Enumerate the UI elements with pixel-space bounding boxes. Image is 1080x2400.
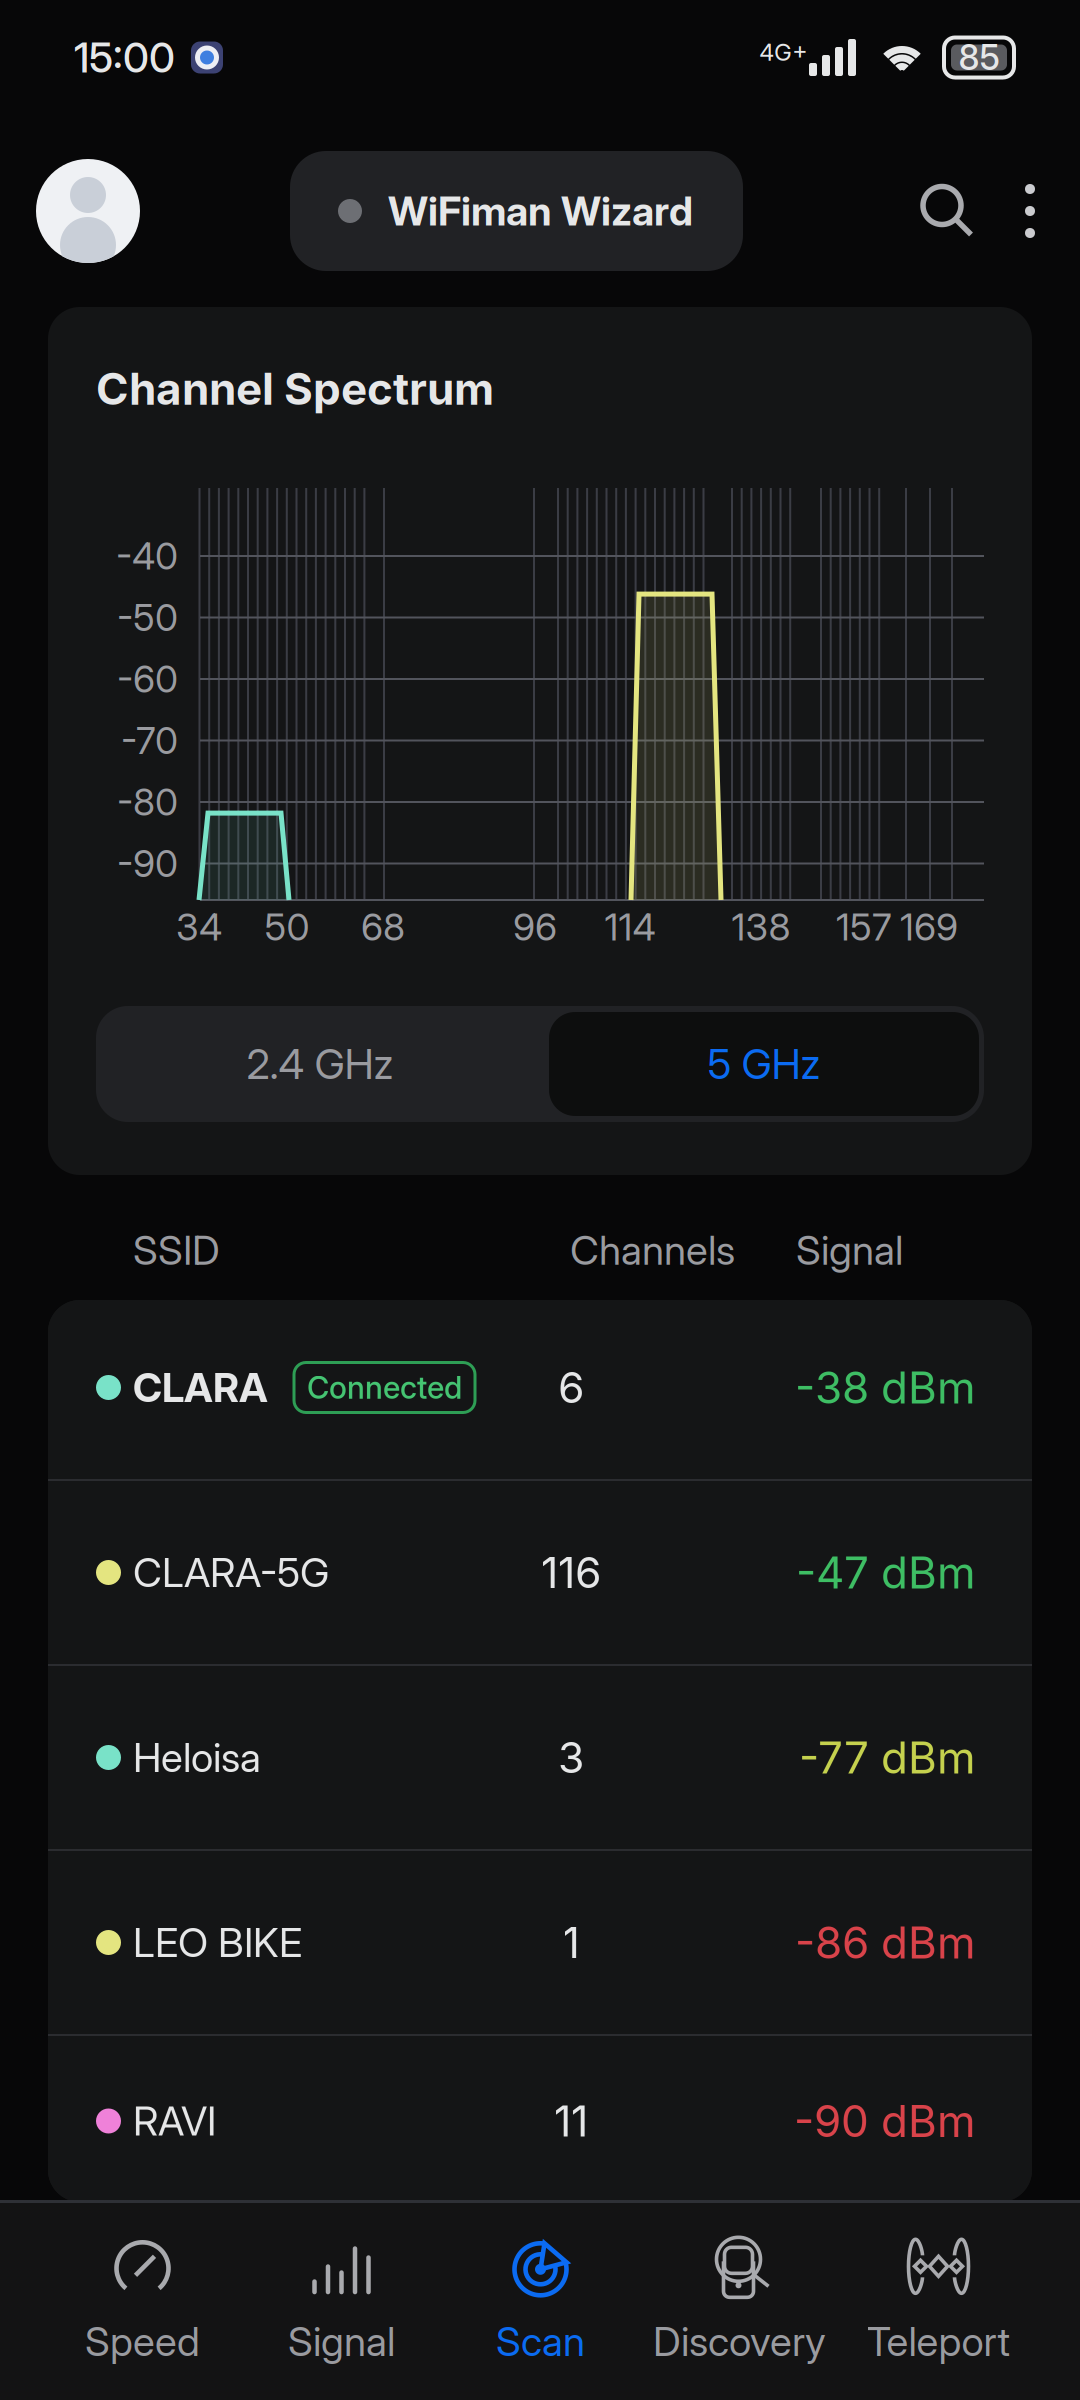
staticText: 169 [900,904,958,950]
staticText: -77 dBm [799,1731,976,1784]
staticText: Speed [85,2317,200,2366]
staticText: -60 [117,656,178,702]
staticText: 4G+ [759,37,808,66]
staticText: 6 [558,1362,584,1413]
staticText: -40 [116,533,178,579]
staticText: 157 [836,904,892,950]
staticText: 85 [958,36,999,78]
staticText: 68 [361,904,405,950]
staticText: -86 dBm [795,1916,976,1969]
staticText: -50 [117,595,178,640]
button[interactable]: Speed [43,2202,242,2400]
button[interactable]: CLARA-5G [48,1481,1032,1664]
button[interactable]: Discovery [640,2202,839,2400]
staticText: -47 dBm [796,1546,976,1599]
staticText: -38 dBm [795,1361,976,1414]
staticText: Heloisa [133,1733,261,1782]
staticText: 50 [264,904,309,950]
staticText: 116 [541,1547,601,1598]
staticText: Channel Spectrum [96,362,494,415]
staticText: SSID [133,1226,220,1274]
staticText: Channels [570,1226,735,1274]
staticText: 15:00 [74,32,175,82]
staticText: LEO BIKE [133,1918,302,1967]
staticText: CLARA [133,1363,268,1412]
staticText: 138 [731,904,790,950]
button[interactable]: Signal [242,2202,441,2400]
button[interactable]: LEO BIKE [48,1851,1032,2034]
button[interactable]: CLARA [48,1296,1032,1479]
staticText: RAVI [133,2097,216,2145]
staticText: Signal [288,2317,395,2366]
staticText: 2.4 GHz [246,1039,393,1089]
staticText: 34 [176,904,222,950]
staticText: 96 [513,904,557,950]
staticText: WiFiman Wizard [388,187,693,235]
staticText: -90 [117,841,178,886]
staticText: -70 [121,718,178,763]
button[interactable]: 5 GHz [544,1006,984,1122]
staticText: -90 dBm [794,2094,976,2148]
staticText: CLARA-5G [133,1548,329,1597]
button[interactable]: RAVI [48,2036,1032,2206]
staticText: 11 [554,2095,588,2147]
button[interactable]: Profile [36,159,140,263]
staticText: 3 [558,1732,584,1783]
button[interactable]: WiFiman Wizard [290,151,743,271]
staticText: Scan [496,2317,585,2366]
button[interactable]: Teleport [839,2202,1038,2400]
staticText: 114 [604,904,655,950]
staticText: Teleport [866,2317,1010,2366]
staticText: -80 [117,779,178,825]
button[interactable]: More options [1002,156,1058,266]
button[interactable]: Heloisa [48,1666,1032,1849]
staticText: 5 GHz [707,1039,820,1089]
staticText: 1 [562,1917,579,1968]
staticText: Connected [307,1369,462,1406]
button[interactable]: Search [893,156,1002,266]
staticText: Signal [796,1226,903,1274]
staticText: Discovery [653,2317,826,2366]
button[interactable]: Scan [441,2202,640,2400]
button[interactable]: 2.4 GHz [96,1006,544,1122]
